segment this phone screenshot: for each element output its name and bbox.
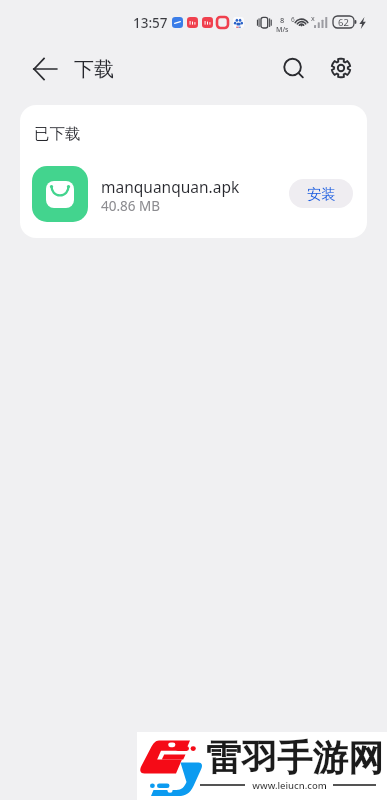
button[interactable]: Back <box>23 47 67 91</box>
button[interactable]: 安装 <box>289 179 353 208</box>
staticText: 下载 <box>74 57 114 82</box>
staticText: 13:57 <box>133 14 168 32</box>
staticText: M/s <box>276 25 289 35</box>
button[interactable]: Search <box>272 47 316 91</box>
staticText: 8 <box>280 15 285 25</box>
button[interactable]: manquanquan.apk <box>20 153 367 234</box>
staticText: 安装 <box>307 185 336 203</box>
staticText: 40.86 MB <box>101 197 161 215</box>
staticText: 62 <box>338 16 349 28</box>
button[interactable]: Settings <box>319 46 363 90</box>
staticText: www.leiucn.com <box>252 779 327 792</box>
staticText: x <box>311 14 315 24</box>
staticText: manquanquan.apk <box>101 176 240 197</box>
staticText: 6 <box>291 15 295 24</box>
staticText: 已下载 <box>34 124 81 144</box>
staticText: 雷羽手游网 <box>206 736 384 776</box>
